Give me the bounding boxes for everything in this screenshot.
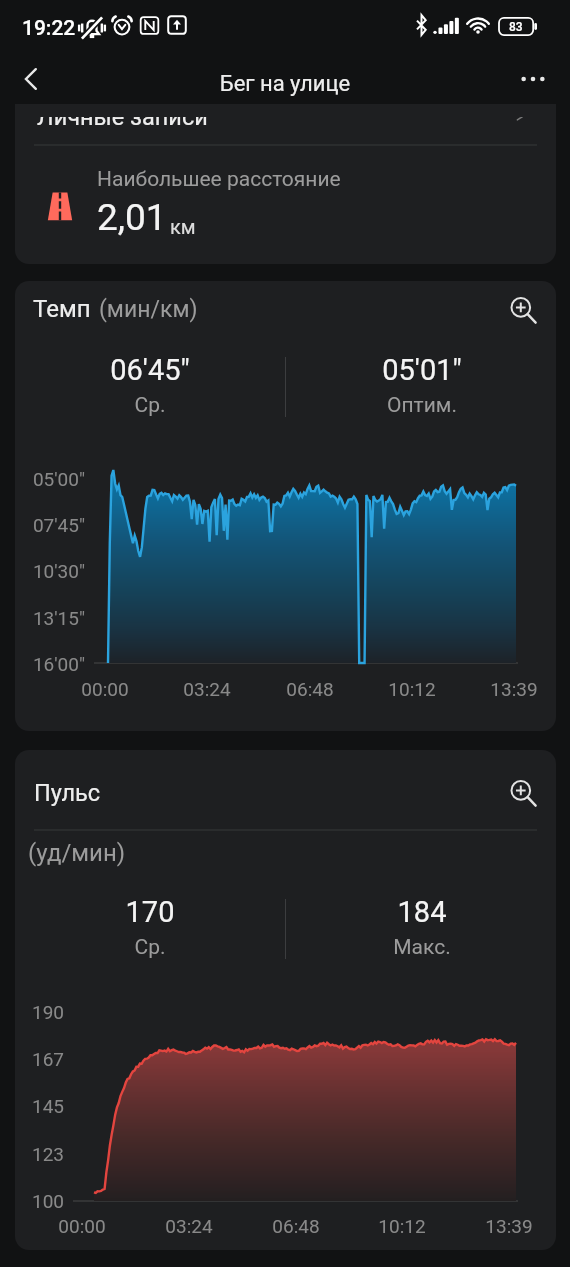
button[interactable]: Back xyxy=(8,56,54,102)
staticText: 13'15" xyxy=(15,607,85,629)
staticText: Пульс xyxy=(34,779,101,807)
staticText: 167 xyxy=(15,1048,64,1070)
staticText: Бег на улице xyxy=(0,71,570,97)
button[interactable]: Expand pace chart xyxy=(502,289,544,331)
staticText: 10:12 xyxy=(367,1215,437,1237)
staticText: 2,01 xyxy=(97,196,167,239)
staticText: 170 xyxy=(70,895,230,929)
staticText: 123 xyxy=(15,1143,64,1165)
button[interactable]: Expand heart rate chart xyxy=(502,772,544,814)
staticText: 06'45" xyxy=(70,353,230,387)
staticText: 13:39 xyxy=(474,1215,544,1237)
staticText: 03:24 xyxy=(172,678,242,700)
staticText: 06:48 xyxy=(261,1215,331,1237)
staticText: 10:12 xyxy=(377,678,447,700)
staticText: 03:24 xyxy=(154,1215,224,1237)
staticText: 19:22 xyxy=(22,16,76,41)
staticText: Темп xyxy=(33,295,91,323)
staticText: 06:48 xyxy=(275,678,345,700)
staticText: 13:39 xyxy=(479,678,549,700)
staticText: Личные записи xyxy=(37,103,208,131)
staticText: 16'00" xyxy=(15,653,85,675)
staticText: 00:00 xyxy=(70,678,140,700)
staticText: 00:00 xyxy=(47,1215,117,1237)
staticText: 190 xyxy=(15,1001,64,1023)
staticText: Ср. xyxy=(70,393,230,418)
staticText: Оптим. xyxy=(342,393,502,418)
staticText: 83 xyxy=(509,20,523,34)
staticText: км xyxy=(170,215,196,238)
staticText: 184 xyxy=(342,895,502,929)
button[interactable]: Личные записи xyxy=(15,78,556,264)
staticText: 100 xyxy=(15,1190,64,1212)
staticText: 145 xyxy=(15,1095,64,1117)
staticText: Ср. xyxy=(70,935,230,960)
button[interactable]: More options xyxy=(510,56,556,102)
staticText: 10'30" xyxy=(15,560,85,582)
staticText: (уд/мин) xyxy=(28,839,126,867)
staticText: 07'45" xyxy=(15,514,85,536)
staticText: (мин/км) xyxy=(99,296,198,323)
staticText: 05'00" xyxy=(15,468,85,490)
staticText: Макс. xyxy=(342,935,502,960)
staticText: 05'01" xyxy=(342,353,502,387)
staticText: Наибольшее расстояние xyxy=(97,167,341,192)
